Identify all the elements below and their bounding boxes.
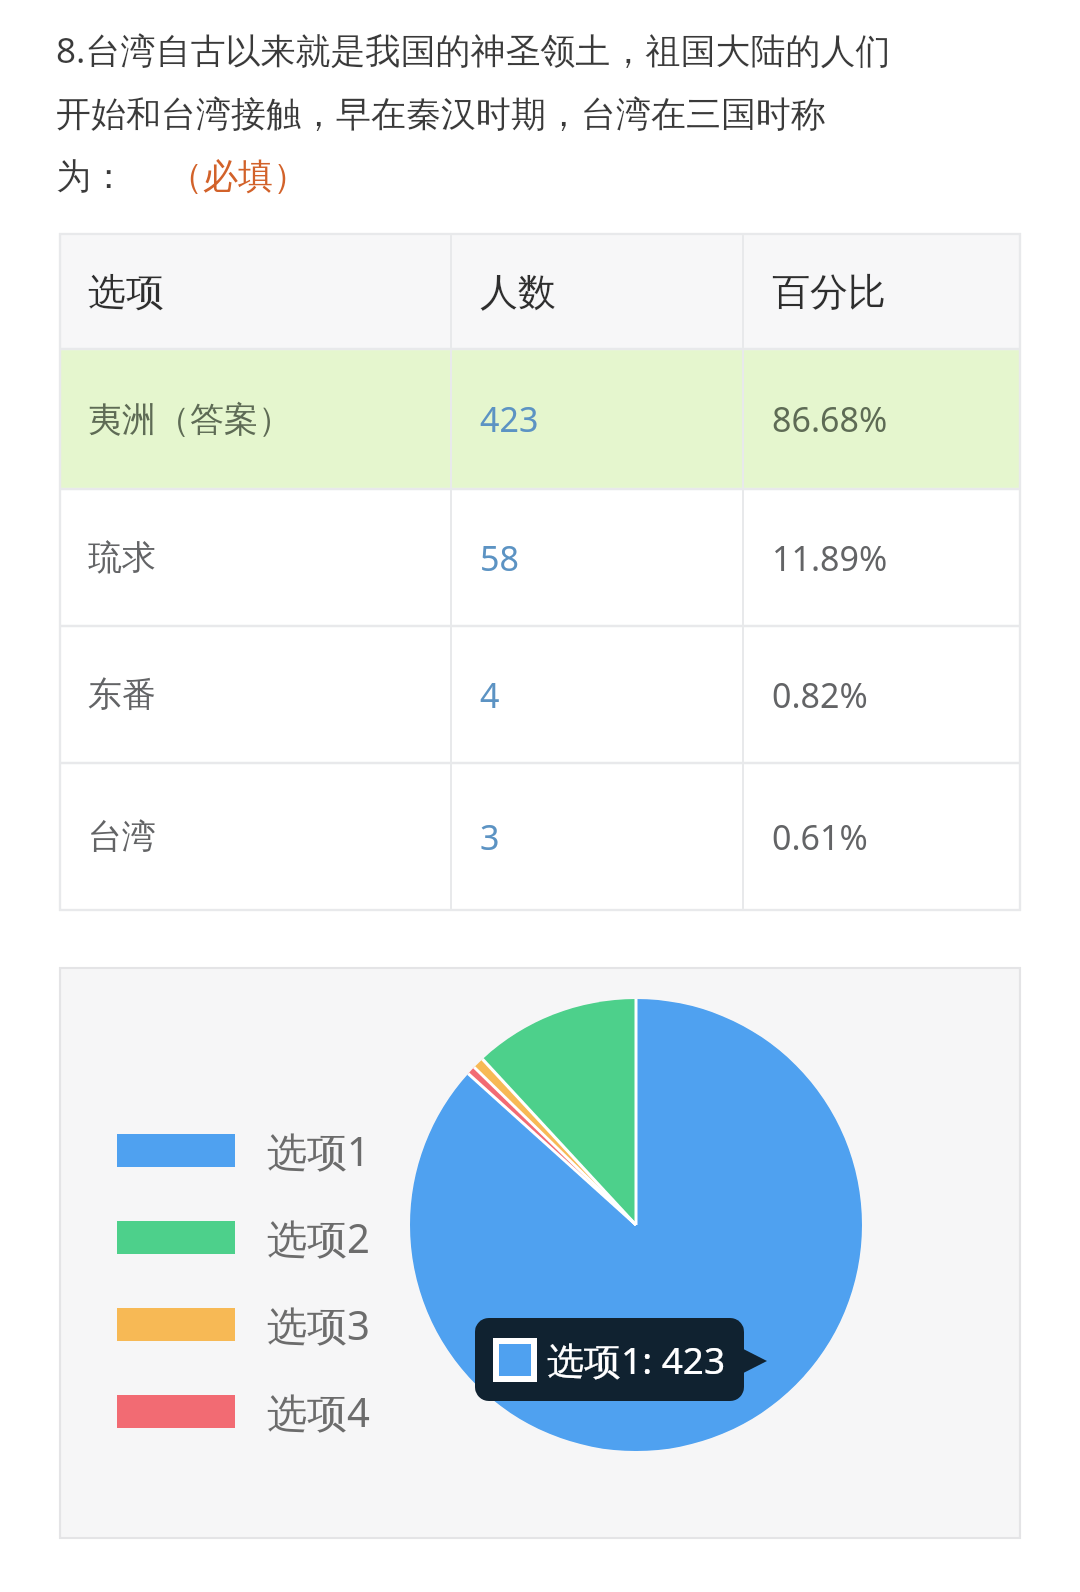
staticText: 58 (480, 535, 519, 581)
staticText: 选项1 (267, 1123, 370, 1178)
button[interactable]: 选项3 (117, 1297, 370, 1352)
button[interactable]: 选项1 (117, 1123, 370, 1178)
button[interactable]: 选项1 (60, 968, 1020, 1538)
staticText: 东番 (88, 673, 156, 716)
staticText: 选项2 (267, 1210, 370, 1265)
button[interactable]: 台湾 (60, 763, 1020, 910)
staticText: （必填） (168, 154, 308, 198)
staticText: 为： (56, 154, 126, 198)
staticText: 选项3 (267, 1297, 370, 1352)
staticText: 琉求 (88, 536, 156, 579)
button[interactable]: 琉求 (60, 489, 1020, 626)
staticText: 百分比 (772, 268, 886, 316)
staticText: 开始和台湾接触，早在秦汉时期，台湾在三国时称 (56, 92, 826, 136)
staticText: 选项1: 423 (547, 1334, 726, 1385)
staticText: 0.82% (772, 672, 868, 718)
staticText: 4 (480, 672, 500, 718)
staticText: 423 (480, 396, 539, 442)
button[interactable]: 夷洲（答案） (60, 349, 1020, 489)
staticText: 11.89% (772, 535, 888, 581)
staticText: 3 (480, 814, 500, 860)
staticText: 夷洲（答案） (88, 398, 292, 441)
button[interactable]: 选项2 (117, 1210, 370, 1265)
staticText: 人数 (480, 268, 556, 316)
button[interactable]: 东番 (60, 626, 1020, 763)
staticText: 0.61% (772, 814, 868, 860)
staticText: 选项 (88, 268, 164, 316)
staticText: 86.68% (772, 396, 888, 442)
staticText: 选项4 (267, 1384, 370, 1439)
staticText: 台湾 (88, 815, 156, 858)
staticText: 8.台湾自古以来就是我国的神圣领土，祖国大陆的人们 (56, 26, 891, 74)
button[interactable]: 选项4 (117, 1384, 370, 1439)
button[interactable]: 选项 (60, 234, 1020, 349)
